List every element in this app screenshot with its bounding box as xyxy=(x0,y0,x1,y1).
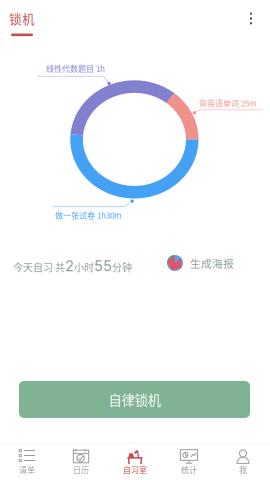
staticText: 分钟 xyxy=(112,260,132,274)
staticText: 我 xyxy=(239,464,247,475)
button[interactable]: 日历 xyxy=(54,444,108,480)
staticText: 共 xyxy=(53,260,65,274)
staticText: 锁机 xyxy=(9,9,35,27)
button[interactable]: More options xyxy=(236,3,266,33)
staticText: 自习室 xyxy=(123,464,147,475)
staticText: 自律锁机 xyxy=(108,390,160,409)
staticText: 清单 xyxy=(19,464,35,475)
staticText: 小时 xyxy=(74,260,94,274)
button[interactable]: 自习室 xyxy=(108,444,162,480)
button[interactable]: 自律锁机 xyxy=(19,381,250,418)
staticText: 做一张试卷 1h30m xyxy=(55,209,121,221)
staticText: 日历 xyxy=(73,464,89,475)
button[interactable]: 统计 xyxy=(162,444,216,480)
staticText: 线性代数题目 1h xyxy=(46,62,105,74)
staticText: 55 xyxy=(94,257,112,275)
staticText: 统计 xyxy=(181,464,197,475)
staticText: 2 xyxy=(65,257,74,275)
button[interactable]: 我 xyxy=(216,444,270,480)
button[interactable]: 清单 xyxy=(0,444,54,480)
staticText: 背英语单词 25m xyxy=(199,97,256,109)
staticText: 今天自习 xyxy=(13,260,53,274)
staticText: 生成海报 xyxy=(190,255,234,271)
button[interactable]: 生成海报 xyxy=(167,255,234,271)
